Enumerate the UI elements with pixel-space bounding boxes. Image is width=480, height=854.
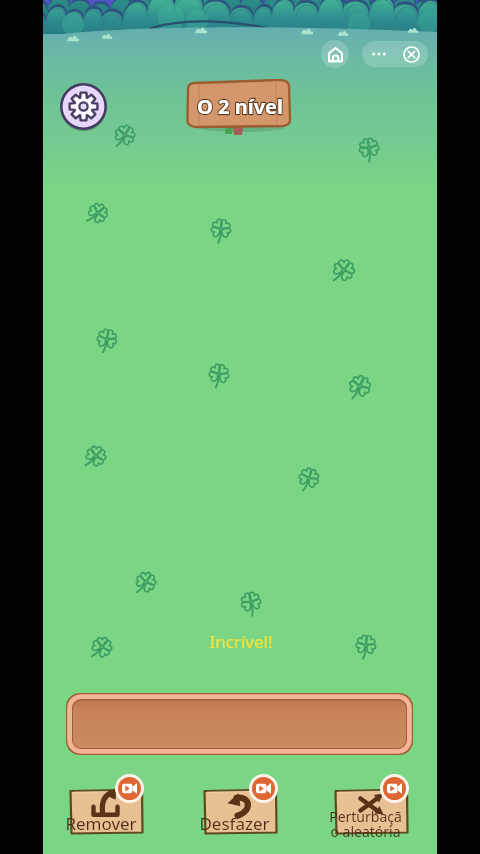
staticText: Desfazer [199,812,270,835]
button[interactable]: Remover [69,788,144,838]
button[interactable]: Watch ad [118,777,141,800]
button[interactable]: Settings [60,83,107,130]
staticText: O 2 nível [197,93,283,120]
button[interactable]: Watch ad [252,777,275,800]
button[interactable]: More options [362,41,395,67]
staticText: O 2 nível [197,93,283,120]
button[interactable]: Close [395,41,428,67]
staticText: Incrível! [206,630,276,653]
button[interactable]: Perturbaçã o aleatória [334,788,409,838]
staticText: Perturbaçã o aleatória [329,807,402,841]
button[interactable]: Desfazer [203,788,278,838]
button[interactable]: Home [321,40,349,68]
button[interactable]: Watch ad [383,777,406,800]
staticText: Remover [65,812,137,835]
